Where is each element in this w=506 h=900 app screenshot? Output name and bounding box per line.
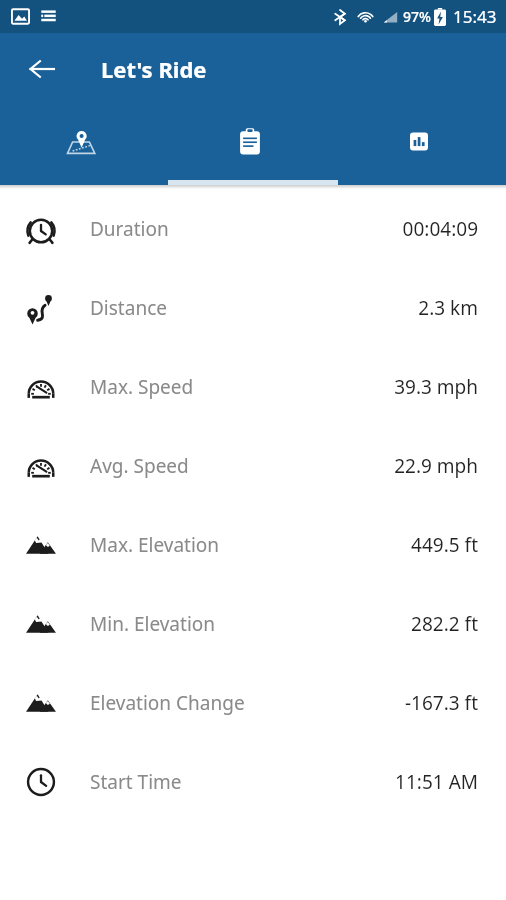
button[interactable]: Max. Speed: [0, 347, 506, 426]
staticText: 11:51 AM: [395, 769, 478, 795]
staticText: 00:04:09: [402, 216, 478, 242]
staticText: Start Time: [90, 769, 182, 795]
staticText: Min. Elevation: [90, 611, 216, 637]
staticText: 15:43: [453, 5, 497, 28]
staticText: 282.2 ft: [411, 611, 478, 637]
staticText: 2.3 km: [418, 295, 478, 321]
staticText: Duration: [90, 216, 169, 242]
button[interactable]: Map: [0, 105, 168, 185]
staticText: 449.5 ft: [411, 532, 478, 558]
button[interactable]: Charts: [337, 105, 506, 185]
button[interactable]: Back: [14, 41, 70, 97]
staticText: Let's Ride: [101, 54, 207, 84]
staticText: 22.9 mph: [394, 453, 478, 479]
button[interactable]: Max. Elevation: [0, 505, 506, 584]
button[interactable]: Avg. Speed: [0, 426, 506, 505]
staticText: Max. Elevation: [90, 532, 220, 558]
button[interactable]: Start Time: [0, 742, 506, 821]
button[interactable]: Summary: [168, 105, 337, 185]
staticText: Elevation Change: [90, 690, 245, 716]
staticText: Max. Speed: [90, 374, 194, 400]
staticText: 97%: [403, 7, 431, 26]
staticText: -167.3 ft: [404, 690, 478, 716]
staticText: Distance: [90, 295, 167, 321]
button[interactable]: Duration: [0, 189, 506, 268]
staticText: 39.3 mph: [394, 374, 478, 400]
button[interactable]: Elevation Change: [0, 663, 506, 742]
button[interactable]: Min. Elevation: [0, 584, 506, 663]
button[interactable]: Distance: [0, 268, 506, 347]
staticText: Avg. Speed: [90, 453, 189, 479]
